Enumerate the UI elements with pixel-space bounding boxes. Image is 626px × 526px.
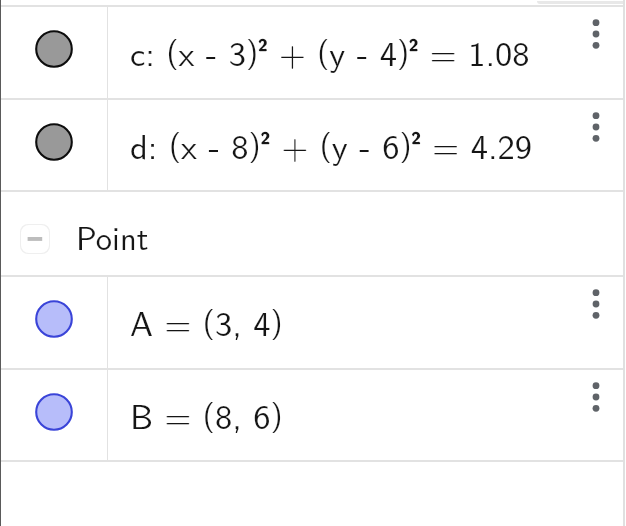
staticText: c: (x - 3)2 + (y - 4)2 = 1.08 [130,26,530,76]
button[interactable]: More options [574,375,618,419]
button[interactable]: More options [574,105,618,149]
button[interactable]: More options [574,282,618,326]
staticText: B = (8, 6) [130,389,283,439]
other: Collapse Point group [20,224,50,254]
button[interactable]: d: (x - 8)2 + (y - 6)2 = 4.29 [0,100,626,191]
button[interactable]: c: (x - 3)2 + (y - 4)2 = 1.08 [0,7,626,98]
button[interactable]: B = (8, 6) [0,370,626,461]
button[interactable]: Collapse Point group [0,192,626,277]
staticText: Point [76,212,149,260]
staticText: A = (3, 4) [130,296,283,346]
button[interactable]: More options [574,12,618,56]
staticText: d: (x - 8)2 + (y - 6)2 = 4.29 [130,119,533,169]
button[interactable]: A = (3, 4) [0,277,626,368]
